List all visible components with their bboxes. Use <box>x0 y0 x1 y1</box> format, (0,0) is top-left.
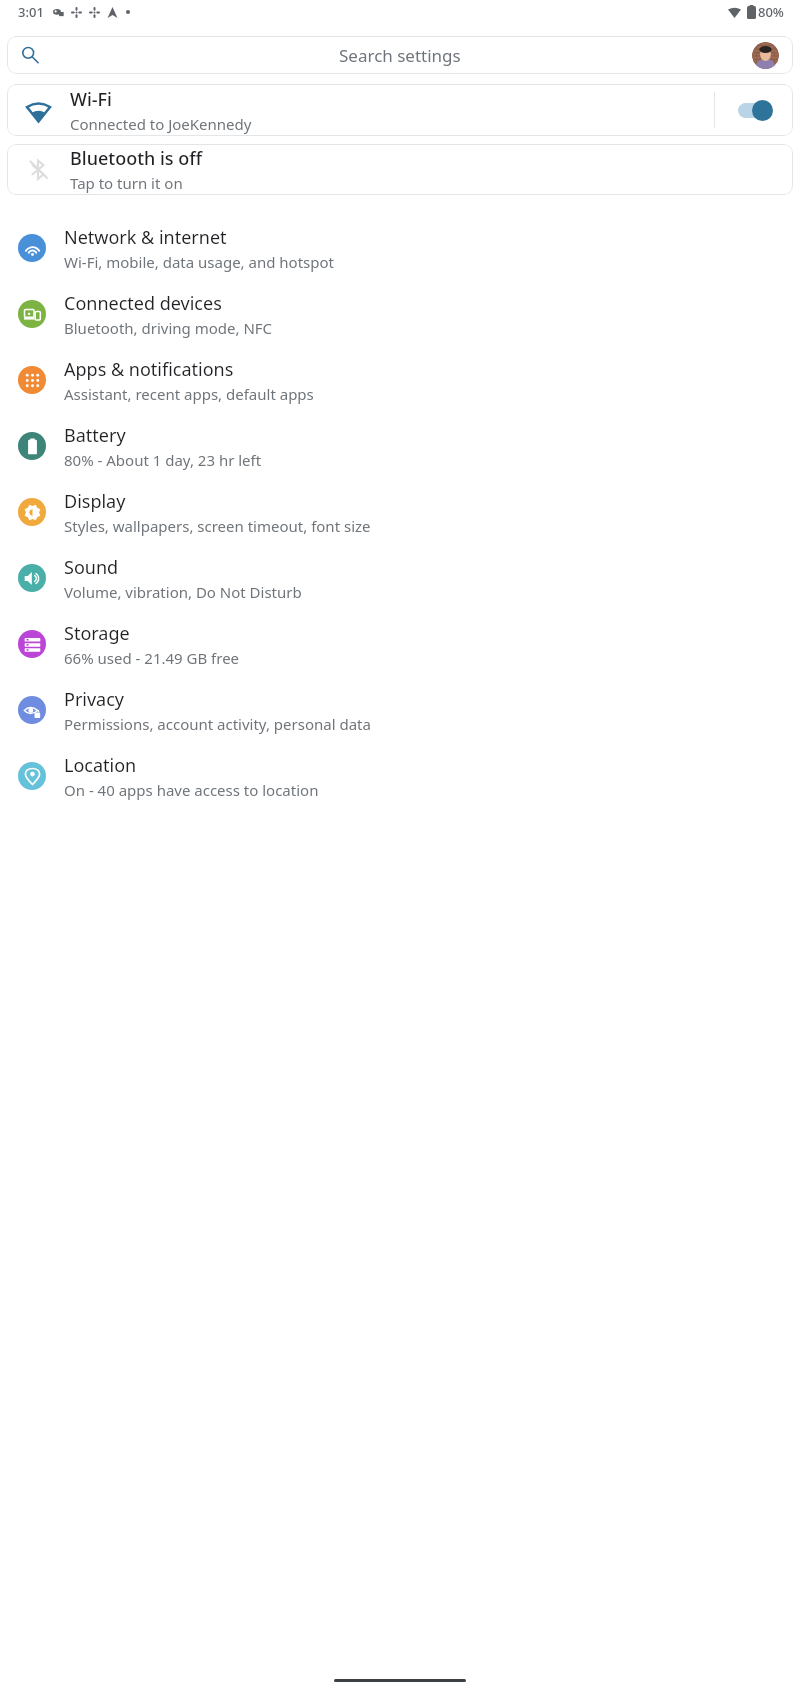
staticText: On - 40 apps have access to location <box>64 780 319 800</box>
button[interactable]: Wi-Fi toggle <box>715 84 793 136</box>
staticText: Privacy <box>64 687 125 712</box>
button[interactable]: Apps & notifications <box>0 347 800 413</box>
staticText: 66% used - 21.49 GB free <box>64 648 240 668</box>
staticText: 3:01 <box>18 3 44 21</box>
button[interactable]: Wi-Fi <box>7 84 793 136</box>
button[interactable]: Location <box>0 743 800 809</box>
staticText: Sound <box>64 555 119 580</box>
staticText: Permissions, account activity, personal … <box>64 714 371 734</box>
staticText: Bluetooth, driving mode, NFC <box>64 318 273 338</box>
button[interactable]: Sound <box>0 545 800 611</box>
staticText: Bluetooth is off <box>70 146 203 171</box>
button[interactable]: Battery <box>0 413 800 479</box>
staticText: Network & internet <box>64 225 227 250</box>
button[interactable]: Connected devices <box>0 281 800 347</box>
staticText: Tap to turn it on <box>70 173 183 193</box>
button[interactable]: Bluetooth is off <box>7 144 793 195</box>
staticText: Connected devices <box>64 291 222 316</box>
staticText: Wi-Fi <box>70 87 112 112</box>
staticText: Apps & notifications <box>64 357 234 382</box>
staticText: Volume, vibration, Do Not Disturb <box>64 582 302 602</box>
button[interactable]: Network & internet <box>0 215 800 281</box>
button[interactable]: Storage <box>0 611 800 677</box>
staticText: Battery <box>64 423 126 448</box>
staticText: Display <box>64 489 126 514</box>
staticText: 80% <box>758 3 784 21</box>
button[interactable]: Search settings <box>7 36 793 74</box>
button[interactable]: Privacy <box>0 677 800 743</box>
staticText: Styles, wallpapers, screen timeout, font… <box>64 516 371 536</box>
staticText: Storage <box>64 621 130 646</box>
button[interactable]: Account <box>752 42 779 69</box>
staticText: Location <box>64 753 137 778</box>
button[interactable]: Display <box>0 479 800 545</box>
staticText: 80% - About 1 day, 23 hr left <box>64 450 262 470</box>
staticText: Search settings <box>339 44 461 67</box>
staticText: Connected to JoeKennedy <box>70 114 252 134</box>
staticText: Assistant, recent apps, default apps <box>64 384 314 404</box>
staticText: Wi-Fi, mobile, data usage, and hotspot <box>64 252 334 272</box>
